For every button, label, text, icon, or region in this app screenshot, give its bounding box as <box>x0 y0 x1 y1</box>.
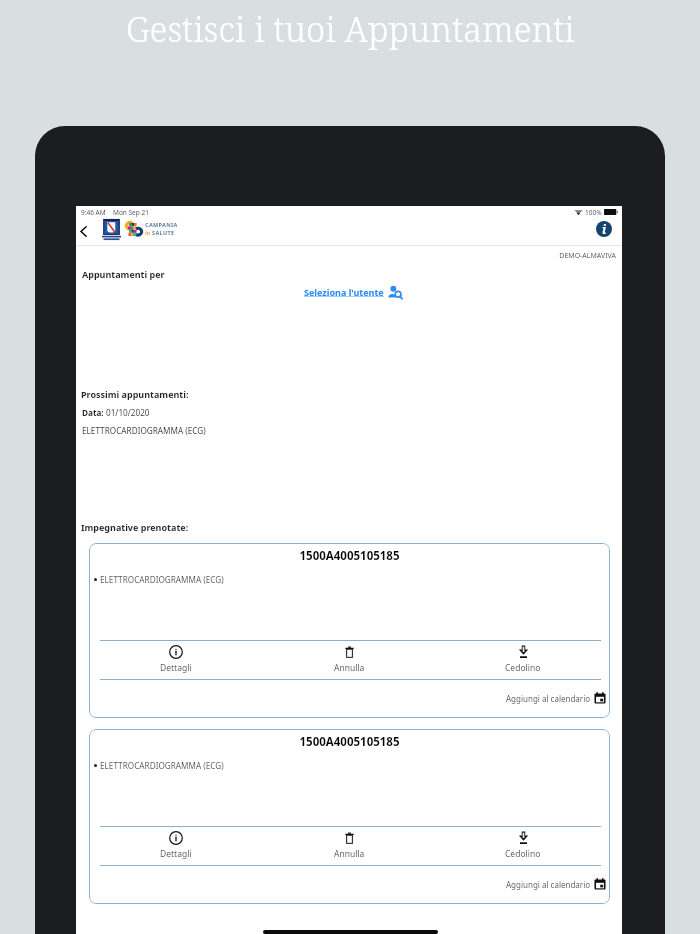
staticText: DEMO-ALMAVIVA <box>559 251 616 261</box>
staticText: Aggiungi al calendario <box>506 693 591 704</box>
button[interactable]: Cedolino <box>436 827 610 865</box>
button[interactable]: Seleziona l'utente <box>304 283 402 300</box>
staticText: 9:46 AM <box>81 208 106 217</box>
staticText: ELETTROCARDIOGRAMMA (ECG) <box>82 425 206 436</box>
staticText: Annulla <box>334 848 365 860</box>
button[interactable]: Dettagli <box>89 827 262 865</box>
staticText: Seleziona l'utente <box>304 286 384 298</box>
button[interactable]: Aggiungi al calendario <box>506 689 606 707</box>
button[interactable]: Cedolino <box>436 641 610 679</box>
staticText: Cedolino <box>505 848 541 860</box>
staticText: Mon Sep 21 <box>113 208 149 217</box>
staticText: in <box>145 229 150 236</box>
staticText: Aggiungi al calendario <box>506 879 591 890</box>
staticText: Gestisci i tuoi Appuntamenti <box>126 5 575 52</box>
staticText: 1500A4005105185 <box>89 734 610 750</box>
staticText: 1500A4005105185 <box>89 548 610 564</box>
button[interactable]: Aggiungi al calendario <box>506 875 606 893</box>
staticText: CAMPANIA <box>145 221 178 228</box>
staticText: Data: <box>82 407 106 418</box>
staticText: 100% <box>585 208 602 217</box>
staticText: Prossimi appuntamenti: <box>81 388 189 400</box>
staticText: SALUTE <box>152 229 175 236</box>
staticText: i <box>602 221 607 237</box>
staticText: ELETTROCARDIOGRAMMA (ECG) <box>100 760 224 771</box>
staticText: Impegnative prenotate: <box>81 521 189 533</box>
staticText: Annulla <box>334 662 365 674</box>
button[interactable]: Dettagli <box>89 641 262 679</box>
staticText: Cedolino <box>505 662 541 674</box>
staticText: Dettagli <box>160 848 192 860</box>
button[interactable]: Indietro <box>73 221 93 241</box>
staticText: 01/10/2020 <box>106 407 150 418</box>
button[interactable]: Informazioni <box>593 218 615 240</box>
button[interactable]: Annulla <box>262 641 436 679</box>
staticText: Dettagli <box>160 662 192 674</box>
staticText: Appuntamenti per <box>82 268 165 280</box>
staticText: ELETTROCARDIOGRAMMA (ECG) <box>100 574 224 585</box>
button[interactable]: Annulla <box>262 827 436 865</box>
